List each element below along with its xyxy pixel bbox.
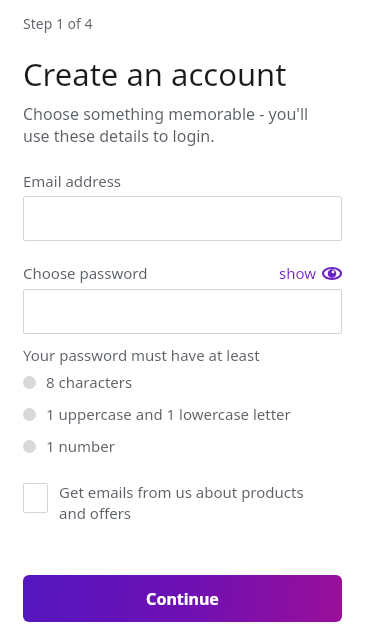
staticText: Create an account xyxy=(23,53,287,95)
staticText: 1 uppercase and 1 lowercase letter xyxy=(46,404,291,424)
staticText: show xyxy=(279,263,317,283)
staticText: 1 number xyxy=(46,436,115,456)
button[interactable]: Password input xyxy=(23,289,342,334)
button[interactable]: Email address input xyxy=(23,196,342,241)
button[interactable]: Get emails from us about products and of… xyxy=(23,482,342,524)
staticText: Email address xyxy=(23,171,122,191)
staticText: 8 characters xyxy=(46,372,133,392)
button[interactable]: Continue xyxy=(23,575,342,622)
staticText: Choose something memorable - you'll use … xyxy=(23,103,309,147)
other: Show password xyxy=(323,267,341,280)
staticText: Get emails from us about products and of… xyxy=(59,482,304,524)
staticText: Continue xyxy=(146,588,219,610)
button[interactable]: show xyxy=(278,261,342,285)
staticText: Choose password xyxy=(23,263,148,283)
staticText: Your password must have at least xyxy=(23,345,260,365)
staticText: Step 1 of 4 xyxy=(23,14,93,33)
